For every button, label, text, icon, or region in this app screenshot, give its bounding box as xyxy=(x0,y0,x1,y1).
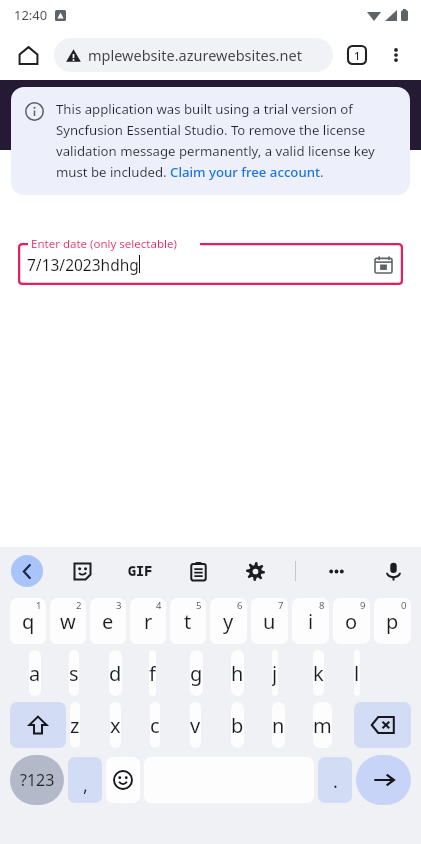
staticText: y xyxy=(223,608,234,635)
staticText: 7 xyxy=(278,599,284,612)
staticText: u xyxy=(263,608,276,635)
staticText: z xyxy=(70,712,80,739)
staticText: r xyxy=(144,608,153,635)
button[interactable]: v xyxy=(190,702,201,748)
staticText: f xyxy=(149,660,156,687)
staticText: l xyxy=(354,660,360,687)
staticText: 7/13/2023hdhg xyxy=(27,254,139,275)
staticText: a xyxy=(29,660,41,687)
button[interactable]: u xyxy=(251,598,288,644)
button[interactable]: n xyxy=(272,702,285,748)
button[interactable]: , xyxy=(68,757,102,803)
button[interactable]: t xyxy=(170,598,206,644)
button[interactable]: x xyxy=(110,702,121,748)
button[interactable]: a xyxy=(29,650,41,696)
staticText: w xyxy=(60,608,76,635)
button[interactable]: More options xyxy=(377,36,415,74)
button[interactable]: e xyxy=(90,598,126,644)
button[interactable]: z xyxy=(70,702,80,748)
button[interactable]: i xyxy=(292,598,329,644)
button[interactable]: w xyxy=(50,598,86,644)
staticText: GIF xyxy=(128,562,153,580)
button[interactable]: y xyxy=(210,598,247,644)
button[interactable]: o xyxy=(333,598,370,644)
staticText: x xyxy=(110,712,121,739)
button[interactable]: Back xyxy=(11,555,43,587)
staticText: d xyxy=(109,660,122,687)
button[interactable]: p xyxy=(374,598,411,644)
button[interactable]: r xyxy=(130,598,166,644)
staticText: 2 xyxy=(76,599,82,612)
staticText: 9 xyxy=(360,599,366,612)
staticText: b xyxy=(231,712,244,739)
staticText: 8 xyxy=(319,599,325,612)
button[interactable]: k xyxy=(313,650,324,696)
staticText: 5 xyxy=(196,599,202,612)
staticText: j xyxy=(272,660,278,687)
staticText: 3 xyxy=(116,599,122,612)
button[interactable]: f xyxy=(149,650,156,696)
staticText: . xyxy=(333,769,338,794)
button[interactable]: j xyxy=(272,650,278,696)
button[interactable]: c xyxy=(150,702,160,748)
other: Choose date xyxy=(375,256,392,273)
button[interactable]: d xyxy=(109,650,122,696)
staticText: o xyxy=(345,608,358,635)
staticText: g xyxy=(190,660,203,687)
button[interactable]: q xyxy=(10,598,46,644)
button[interactable]: b xyxy=(231,702,244,748)
button[interactable]: Shift xyxy=(10,702,66,748)
button[interactable]: mplewebsite.azurewebsites.net xyxy=(54,38,333,72)
staticText: Enter date (only selectable) xyxy=(31,236,177,252)
staticText: ?123 xyxy=(20,769,55,791)
button[interactable]: ?123 xyxy=(10,755,64,805)
button[interactable]: . xyxy=(318,757,352,803)
button[interactable]: Voice input xyxy=(376,554,410,588)
button[interactable]: Stickers xyxy=(65,554,99,588)
button[interactable]: Emoji xyxy=(106,757,140,803)
staticText: s xyxy=(69,660,79,687)
staticText: m xyxy=(313,712,332,739)
button[interactable]: More xyxy=(319,554,353,588)
staticText: h xyxy=(231,660,244,687)
staticText: e xyxy=(102,608,114,635)
staticText: t xyxy=(184,608,192,635)
staticText: , xyxy=(83,773,88,798)
button[interactable]: 7/13/2023hdhg xyxy=(18,243,403,285)
button[interactable]: Tabs, 1 open xyxy=(337,35,377,75)
button[interactable]: Home xyxy=(8,35,48,75)
staticText: This application was built using a trial… xyxy=(56,100,396,181)
staticText: v xyxy=(190,712,201,739)
button[interactable]: Settings xyxy=(238,554,272,588)
staticText: mplewebsite.azurewebsites.net xyxy=(88,45,302,65)
button[interactable]: s xyxy=(69,650,79,696)
staticText: i xyxy=(308,608,314,635)
staticText: 6 xyxy=(237,599,243,612)
button[interactable]: l xyxy=(354,650,360,696)
staticText: p xyxy=(386,608,399,635)
staticText: 1 xyxy=(354,48,361,63)
button[interactable]: h xyxy=(231,650,244,696)
button[interactable]: GIF xyxy=(121,554,159,588)
staticText: n xyxy=(272,712,285,739)
staticText: 12:40 xyxy=(14,6,48,24)
button[interactable]: Enter xyxy=(356,755,411,805)
staticText: 4 xyxy=(156,599,162,612)
staticText: q xyxy=(22,608,35,635)
staticText: 1 xyxy=(36,599,42,612)
staticText: c xyxy=(150,712,160,739)
button[interactable]: g xyxy=(190,650,203,696)
staticText: k xyxy=(313,660,324,687)
button[interactable]: m xyxy=(313,702,332,748)
button[interactable]: Clipboard xyxy=(181,554,215,588)
button[interactable]: Backspace xyxy=(354,702,411,748)
staticText: 0 xyxy=(401,599,407,612)
